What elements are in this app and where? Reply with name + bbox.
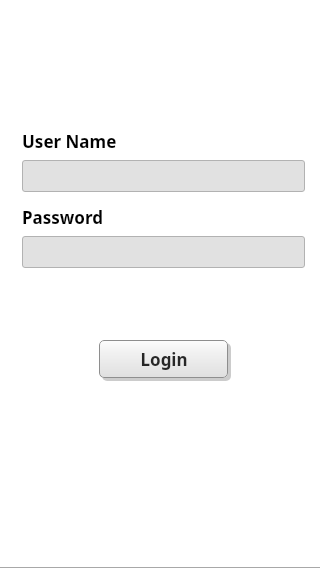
- button[interactable]: Login: [99, 340, 228, 378]
- staticText: Password: [22, 206, 103, 229]
- button[interactable]: [22, 160, 305, 192]
- button[interactable]: [22, 236, 305, 268]
- staticText: Login: [140, 348, 188, 371]
- staticText: User Name: [22, 130, 117, 153]
